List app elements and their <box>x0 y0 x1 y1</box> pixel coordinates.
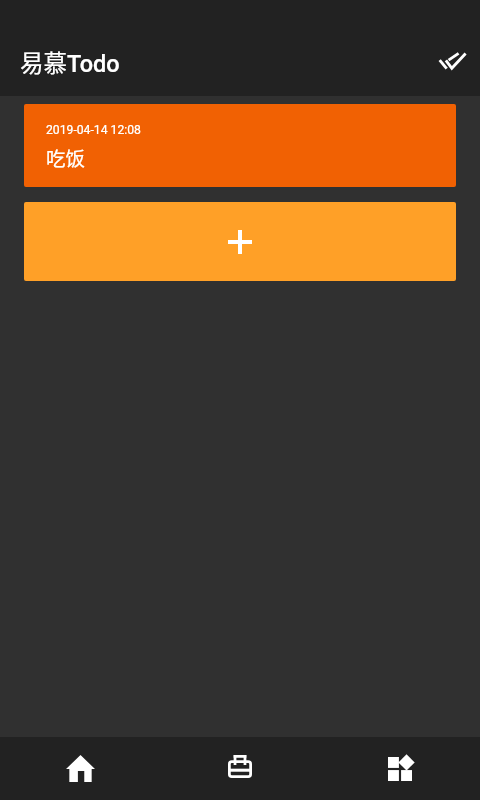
staticText: 2019-04-14 12:08 <box>46 123 141 137</box>
button[interactable]: Add todo <box>24 202 456 281</box>
button[interactable]: Mark all done <box>428 36 476 84</box>
staticText: 易慕Todo <box>20 45 120 79</box>
button[interactable]: Home <box>0 737 160 800</box>
button[interactable]: 2019-04-14 12:08 <box>24 104 456 187</box>
button[interactable]: Work <box>160 737 320 800</box>
button[interactable]: Apps <box>320 737 480 800</box>
staticText: 吃饭 <box>46 143 86 171</box>
